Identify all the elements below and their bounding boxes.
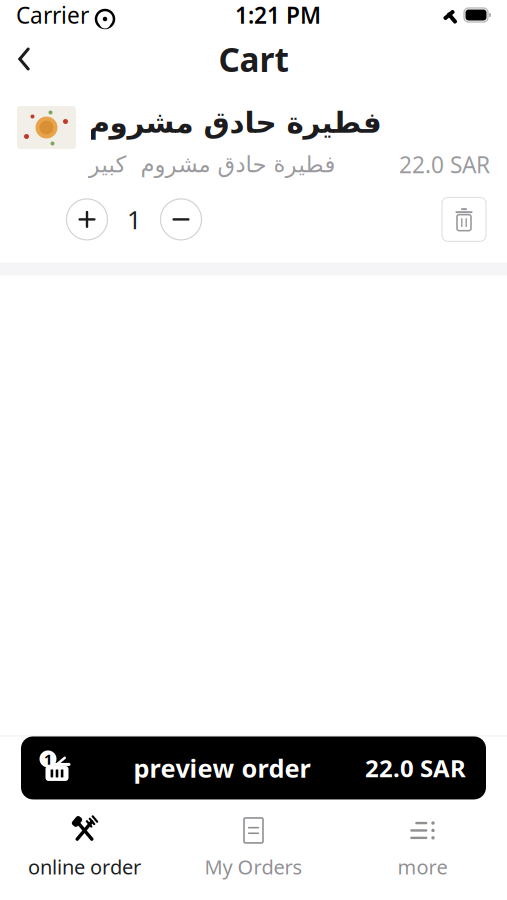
button[interactable]: Delete item — [442, 197, 486, 241]
staticText: Carrier — [16, 0, 89, 30]
staticText: 22.0 SAR — [365, 752, 466, 784]
staticText: preview order — [133, 751, 310, 785]
button[interactable]: Decrease quantity — [157, 195, 205, 243]
button[interactable]: 1 — [21, 736, 486, 799]
button[interactable]: Back — [0, 37, 48, 81]
staticText: فطيرة حادق مشروم كبير — [88, 151, 335, 177]
button[interactable]: online order — [0, 807, 169, 888]
staticText: فطيرة حادق مشروم — [88, 106, 381, 139]
staticText: 1 — [127, 203, 141, 236]
button[interactable]: more — [338, 807, 507, 888]
staticText: more — [397, 853, 447, 880]
staticText: 22.0 SAR — [399, 149, 490, 179]
staticText: My Orders — [204, 853, 302, 880]
button[interactable]: Increase quantity — [63, 195, 111, 243]
button[interactable]: My Orders — [169, 807, 338, 888]
staticText: Cart — [218, 37, 288, 81]
staticText: 1 — [44, 749, 52, 769]
staticText: online order — [28, 853, 141, 880]
staticText: 1:21 PM — [235, 0, 321, 30]
